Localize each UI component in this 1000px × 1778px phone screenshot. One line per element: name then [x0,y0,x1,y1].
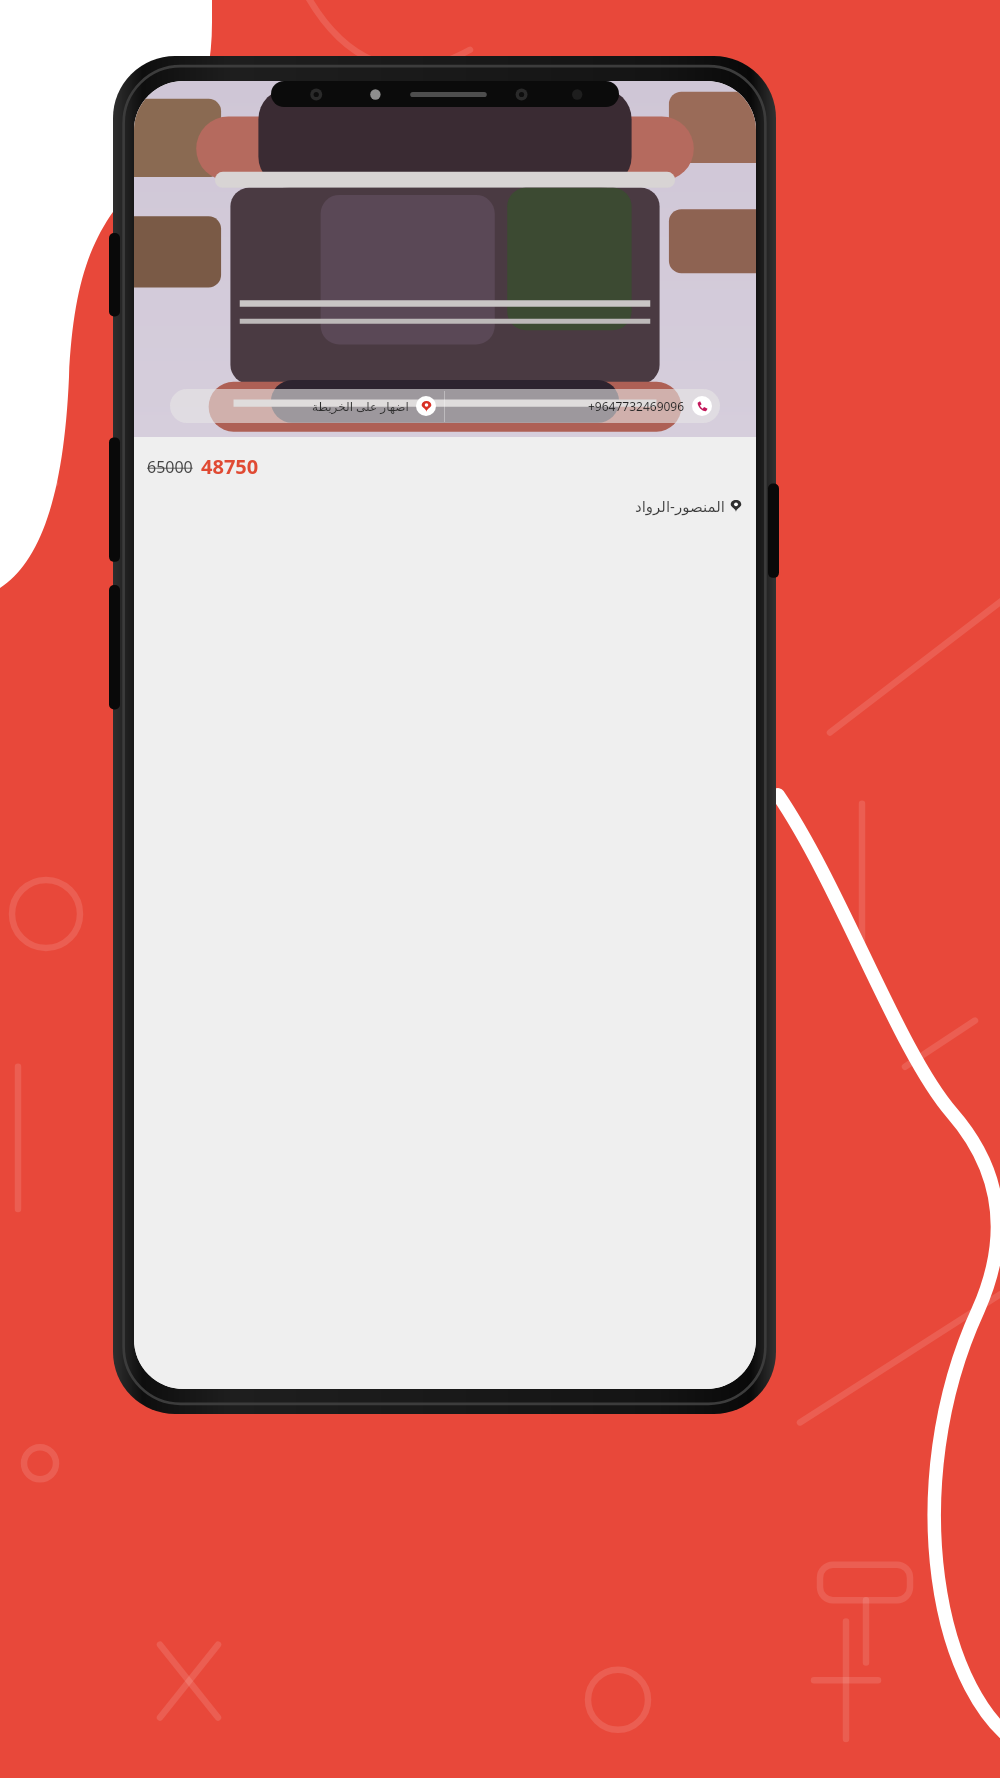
staticText: 48750 [201,453,259,480]
staticText: المنصور-الرواد [635,496,725,516]
staticText: +9647732469096 [588,398,685,414]
staticText: 65000 [147,456,193,478]
button[interactable]: المنصور-الرواد [134,496,756,516]
button[interactable]: اضهار على الخريطة [170,389,444,423]
staticText: اضهار على الخريطة [312,398,409,414]
button[interactable]: +9647732469096 [445,389,720,423]
other: Call [692,396,712,416]
